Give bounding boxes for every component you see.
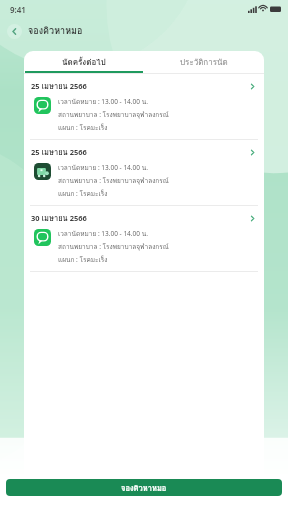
button[interactable]: นัดครั้งต่อไป [24, 51, 144, 73]
staticText: นัดครั้งต่อไป [62, 56, 106, 69]
button[interactable]: 25 เมษายน 2566 [24, 140, 264, 205]
staticText: แผนก : โรคมะเร็ง [58, 255, 108, 265]
staticText: สถานพยาบาล : โรงพยาบาลจุฬาลงกรณ์ [58, 110, 169, 120]
staticText: จองคิวหาหมอ [121, 482, 167, 494]
button[interactable]: จองคิวหาหมอ [6, 479, 282, 496]
staticText: เวลานัดหมาย : 13.00 - 14.00 น. [58, 97, 148, 107]
other: View details [248, 214, 257, 223]
staticText: 25 เมษายน 2566 [31, 80, 87, 92]
button[interactable]: 25 เมษายน 2566 [24, 74, 264, 139]
staticText: 30 เมษายน 2566 [31, 212, 87, 224]
button[interactable]: 30 เมษายน 2566 [24, 206, 264, 271]
staticText: สถานพยาบาล : โรงพยาบาลจุฬาลงกรณ์ [58, 176, 169, 186]
staticText: เวลานัดหมาย : 13.00 - 14.00 น. [58, 229, 148, 239]
staticText: แผนก : โรคมะเร็ง [58, 123, 108, 133]
staticText: 25 เมษายน 2566 [31, 146, 87, 158]
button[interactable]: ประวัติการนัด [144, 51, 264, 73]
staticText: จองคิวหาหมอ [28, 24, 83, 38]
staticText: ประวัติการนัด [180, 56, 228, 69]
staticText: เวลานัดหมาย : 13.00 - 14.00 น. [58, 163, 148, 173]
staticText: แผนก : โรคมะเร็ง [58, 189, 108, 199]
other: View details [248, 148, 257, 157]
staticText: สถานพยาบาล : โรงพยาบาลจุฬาลงกรณ์ [58, 242, 169, 252]
staticText: 9:41 [10, 4, 26, 15]
other: View details [248, 82, 257, 91]
button[interactable]: Back [7, 24, 22, 39]
